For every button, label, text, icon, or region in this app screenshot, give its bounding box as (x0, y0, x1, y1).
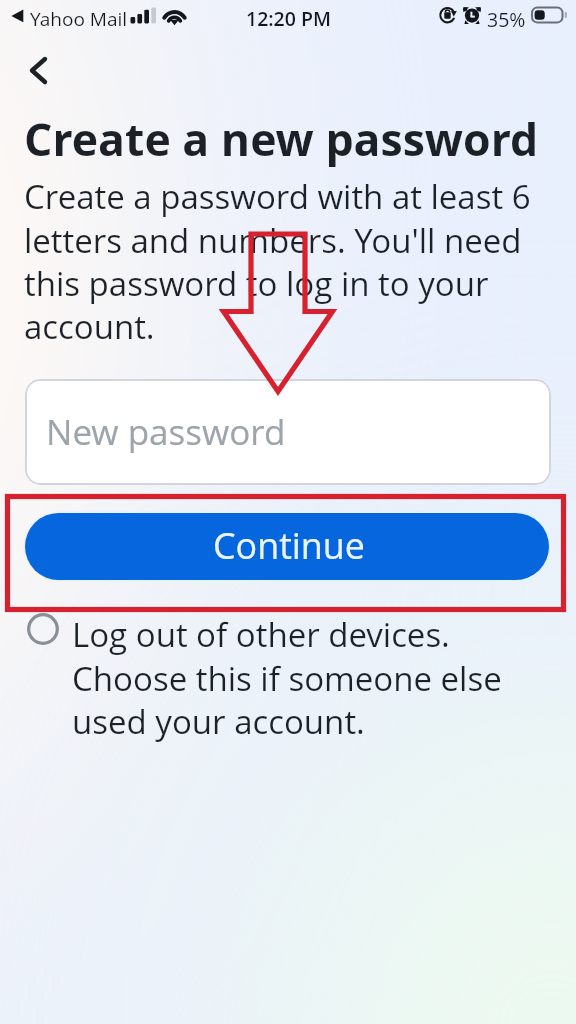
staticText: 12:20 PM (246, 5, 331, 32)
staticText: Create a new password (24, 108, 539, 169)
staticText: 35% (487, 6, 526, 33)
button[interactable]: Continue (25, 513, 549, 580)
staticText: Continue (213, 521, 365, 570)
staticText: Log out of other devices. Choose this if… (72, 612, 534, 743)
button[interactable]: Log out of other devices. Choose this if… (27, 612, 547, 743)
button[interactable]: New password (25, 379, 551, 485)
button[interactable]: Back (14, 46, 62, 94)
staticText: New password (46, 408, 286, 456)
staticText: Yahoo Mail (30, 6, 128, 32)
staticText: Create a password with at least 6 letter… (24, 174, 554, 348)
